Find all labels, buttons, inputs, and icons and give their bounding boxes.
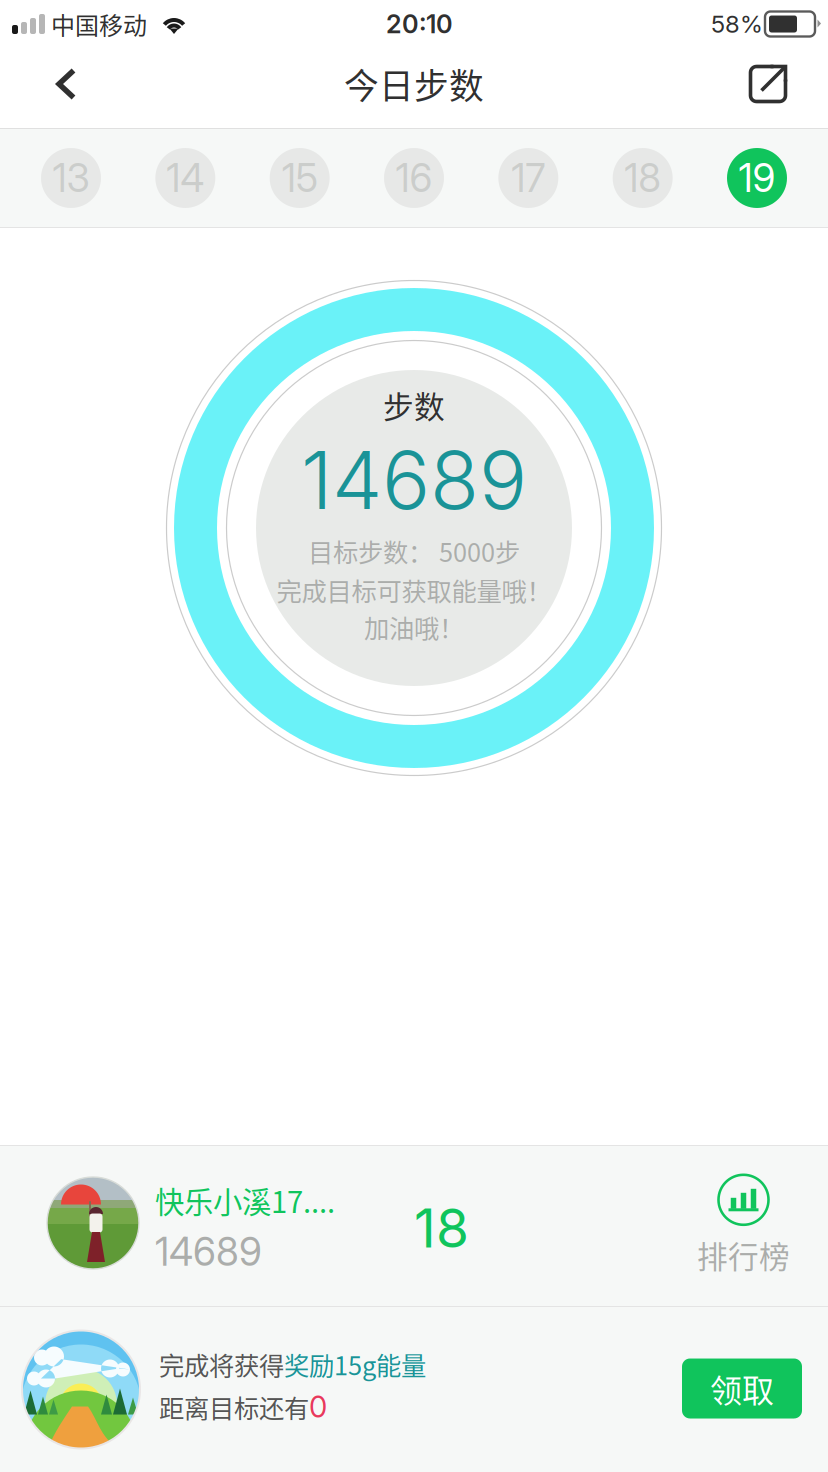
staticText: 0	[309, 1389, 327, 1425]
staticText: 加油哦！	[364, 609, 464, 645]
staticText: 15	[282, 155, 318, 201]
button[interactable]: 14	[155, 148, 215, 208]
staticText: 中国移动	[51, 7, 147, 41]
staticText: 奖励15g能量	[284, 1346, 426, 1382]
button[interactable]: Back	[29, 47, 103, 121]
staticText: 16	[395, 155, 432, 201]
staticText: 18	[414, 1196, 469, 1260]
button[interactable]: Share	[731, 47, 805, 121]
staticText: 距离目标还有	[159, 1388, 309, 1425]
staticText: 14689	[301, 432, 527, 528]
staticText: 17	[511, 155, 545, 201]
staticText: 完成目标可获取能量哦！	[276, 572, 551, 608]
staticText: 排行榜	[697, 1233, 790, 1277]
staticText: 14689	[155, 1228, 262, 1275]
staticText: 58%	[711, 9, 763, 38]
staticText: 20:10	[386, 9, 453, 39]
staticText: 13	[52, 155, 89, 201]
staticText: 快乐小溪17....	[155, 1179, 335, 1221]
button[interactable]: 19	[727, 148, 787, 208]
button[interactable]: 17	[498, 148, 558, 208]
staticText: 完成将获得	[159, 1346, 284, 1382]
staticText: 19	[738, 155, 775, 201]
staticText: 今日步数	[344, 59, 484, 109]
button[interactable]: 13	[41, 148, 101, 208]
staticText: 目标步数： 5000步	[308, 533, 520, 569]
button[interactable]: 领取	[682, 1358, 802, 1418]
staticText: 14	[166, 155, 204, 201]
staticText: 步数	[383, 383, 445, 427]
staticText: 领取	[710, 1365, 774, 1412]
button[interactable]: 快乐小溪17....	[0, 1146, 828, 1306]
button[interactable]: 16	[384, 148, 444, 208]
button[interactable]: 15	[270, 148, 330, 208]
staticText: 18	[624, 155, 661, 201]
button[interactable]: 18	[613, 148, 673, 208]
